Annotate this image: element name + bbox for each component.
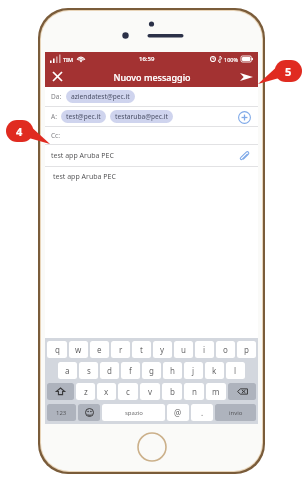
staticText: test app Aruba PEC	[53, 172, 116, 182]
button[interactable]: Attach file	[236, 148, 252, 164]
button[interactable]: Send	[234, 66, 258, 87]
button[interactable]: k	[205, 362, 224, 379]
staticText: invio	[229, 409, 243, 417]
staticText: z	[84, 386, 88, 397]
staticText: Cc:	[51, 131, 60, 140]
staticText: j	[192, 365, 195, 376]
button[interactable]: Emoji	[78, 404, 100, 421]
button[interactable]: d	[100, 362, 119, 379]
staticText: i	[203, 344, 206, 355]
staticText: b	[170, 386, 175, 397]
staticText: x	[104, 386, 109, 397]
button[interactable]: g	[142, 362, 161, 379]
staticText: 4	[16, 124, 23, 139]
button[interactable]: n	[184, 383, 204, 400]
staticText: l	[234, 365, 237, 376]
button[interactable]: aziendatest@pec.it	[66, 90, 135, 103]
staticText: p	[244, 344, 249, 355]
staticText: o	[223, 344, 228, 355]
button[interactable]: test app Aruba PEC	[53, 172, 258, 338]
button[interactable]: m	[206, 383, 226, 400]
button[interactable]: h	[163, 362, 182, 379]
staticText: u	[181, 344, 186, 355]
staticText: f	[129, 365, 132, 376]
button[interactable]: s	[79, 362, 98, 379]
button[interactable]: v	[140, 383, 160, 400]
button[interactable]: Add recipient	[236, 109, 252, 125]
staticText: spazio	[125, 409, 143, 417]
staticText: c	[126, 386, 130, 397]
staticText: k	[212, 365, 217, 376]
button[interactable]: w	[69, 341, 88, 358]
staticText: w	[75, 344, 82, 355]
button[interactable]: 123	[47, 404, 76, 421]
button[interactable]: Cc:	[51, 127, 252, 144]
button[interactable]: Home	[137, 432, 167, 462]
staticText: s	[87, 365, 91, 376]
button[interactable]: r	[111, 341, 130, 358]
button[interactable]: q	[47, 341, 67, 358]
button[interactable]: test@pec.it	[61, 110, 106, 123]
staticText: test@pec.it	[66, 112, 101, 121]
button[interactable]: e	[90, 341, 109, 358]
button[interactable]: f	[121, 362, 140, 379]
staticText: Da:	[51, 92, 62, 101]
staticText: t	[140, 344, 143, 355]
button[interactable]: y	[153, 341, 172, 358]
staticText: 123	[56, 409, 67, 417]
button[interactable]: o	[216, 341, 235, 358]
button[interactable]: c	[118, 383, 138, 400]
staticText: g	[149, 365, 154, 376]
button[interactable]: u	[174, 341, 193, 358]
button[interactable]: l	[226, 362, 245, 379]
button[interactable]: Shift	[47, 383, 74, 400]
staticText: e	[97, 344, 102, 355]
button[interactable]: b	[162, 383, 182, 400]
staticText: @	[174, 407, 182, 418]
staticText: v	[148, 386, 153, 397]
staticText: test app Aruba PEC	[51, 151, 114, 161]
button[interactable]: @	[167, 404, 189, 421]
staticText: testaruba@pec.it	[115, 112, 168, 121]
staticText: h	[170, 365, 175, 376]
staticText: Nuovo messaggio	[113, 71, 191, 83]
staticText: n	[192, 386, 197, 397]
staticText: 16:59	[139, 55, 155, 63]
button[interactable]: z	[76, 383, 95, 400]
button[interactable]: a	[58, 362, 77, 379]
button[interactable]: p	[237, 341, 256, 358]
button[interactable]: testaruba@pec.it	[110, 110, 173, 123]
staticText: aziendatest@pec.it	[71, 92, 130, 101]
button[interactable]: i	[195, 341, 214, 358]
button[interactable]: invio	[215, 404, 256, 421]
staticText: a	[65, 365, 70, 376]
button[interactable]: x	[97, 383, 116, 400]
staticText: 100%	[224, 56, 239, 63]
staticText: d	[107, 365, 112, 376]
staticText: q	[55, 344, 60, 355]
button[interactable]: Close	[45, 66, 69, 87]
button[interactable]: Backspace	[228, 383, 256, 400]
staticText: y	[160, 344, 165, 355]
button[interactable]: j	[184, 362, 203, 379]
button[interactable]: t	[132, 341, 151, 358]
staticText: TIM	[63, 56, 74, 63]
button[interactable]: .	[191, 404, 213, 421]
staticText: 5	[285, 64, 292, 79]
staticText: .	[201, 407, 204, 418]
staticText: A:	[51, 112, 57, 121]
button[interactable]: spazio	[102, 404, 165, 421]
staticText: m	[212, 386, 220, 397]
staticText: r	[119, 344, 123, 355]
